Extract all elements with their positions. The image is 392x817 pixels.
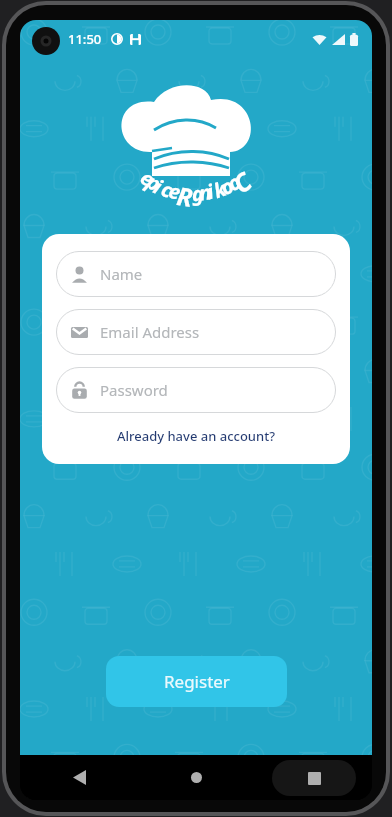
- staticText: e: [135, 164, 161, 193]
- staticText: Password: [100, 380, 168, 400]
- button[interactable]: Home: [138, 755, 255, 800]
- staticText: o: [216, 172, 238, 201]
- staticText: R: [175, 178, 195, 214]
- staticText: Register: [164, 670, 230, 693]
- staticText: Already have an account?: [117, 427, 275, 445]
- button[interactable]: Register: [106, 656, 287, 707]
- staticText: p: [142, 168, 166, 197]
- button[interactable]: Name: [56, 251, 336, 297]
- staticText: i: [204, 178, 216, 205]
- staticText: k: [210, 175, 230, 204]
- staticText: i: [150, 173, 166, 200]
- staticText: n: [197, 178, 214, 207]
- staticText: Email Address: [100, 322, 200, 342]
- staticText: o: [222, 168, 246, 197]
- staticText: 11:50: [68, 30, 102, 48]
- button[interactable]: Recent apps: [255, 755, 372, 800]
- button[interactable]: Already have an account?: [56, 425, 336, 447]
- staticText: e: [166, 177, 184, 206]
- staticText: c: [158, 175, 176, 204]
- button[interactable]: Password: [56, 367, 336, 413]
- button[interactable]: Back: [20, 755, 138, 800]
- button[interactable]: Email Address: [56, 309, 336, 355]
- staticText: g: [191, 180, 205, 207]
- staticText: C: [225, 163, 258, 200]
- staticText: Name: [100, 264, 143, 284]
